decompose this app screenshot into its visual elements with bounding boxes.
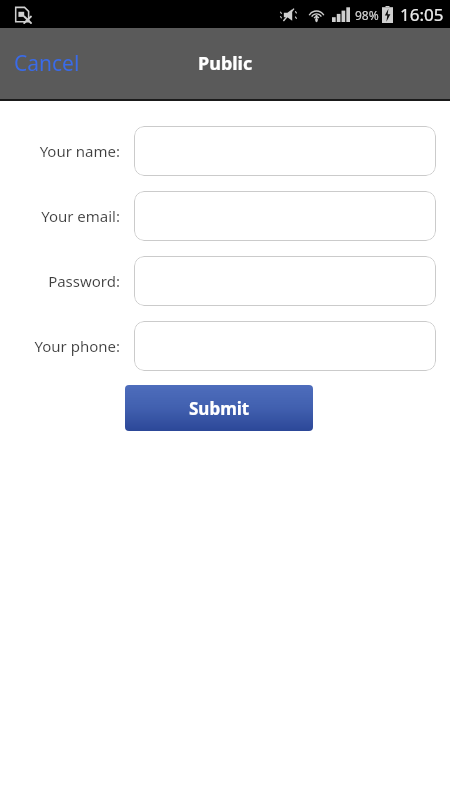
button[interactable]: Password: (134, 256, 436, 306)
staticText: 98% (355, 7, 379, 23)
staticText: Public (198, 51, 253, 76)
staticText: Password: (0, 271, 120, 291)
button[interactable]: Your phone: (134, 321, 436, 371)
button[interactable]: Your name: (134, 126, 436, 176)
staticText: Your name: (0, 141, 120, 161)
staticText: 16:05 (400, 3, 444, 26)
staticText: Submit (189, 397, 250, 420)
staticText: Cancel (14, 49, 80, 78)
staticText: Your email: (0, 206, 120, 226)
button[interactable]: Submit (125, 385, 313, 431)
staticText: Your phone: (0, 336, 120, 356)
button[interactable]: Your email: (134, 191, 436, 241)
button[interactable]: Cancel (0, 39, 94, 88)
